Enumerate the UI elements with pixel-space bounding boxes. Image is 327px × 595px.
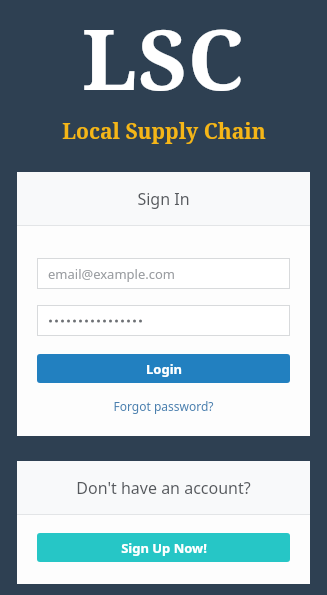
staticText: email@example.com	[48, 265, 175, 283]
staticText: LSC	[82, 0, 245, 114]
button[interactable]: Login	[37, 354, 290, 383]
staticText: Login	[146, 360, 182, 378]
button[interactable]: email@example.com	[37, 258, 290, 289]
staticText: Forgot password?	[113, 398, 214, 414]
button[interactable]: Forgot password?	[109, 396, 218, 416]
button[interactable]: Sign Up Now!	[37, 533, 290, 562]
staticText: Local Supply Chain	[62, 117, 266, 146]
button[interactable]: Password	[37, 305, 290, 336]
staticText: Sign Up Now!	[121, 539, 207, 557]
staticText: Sign In	[137, 188, 190, 210]
staticText: Don't have an account?	[76, 477, 251, 499]
